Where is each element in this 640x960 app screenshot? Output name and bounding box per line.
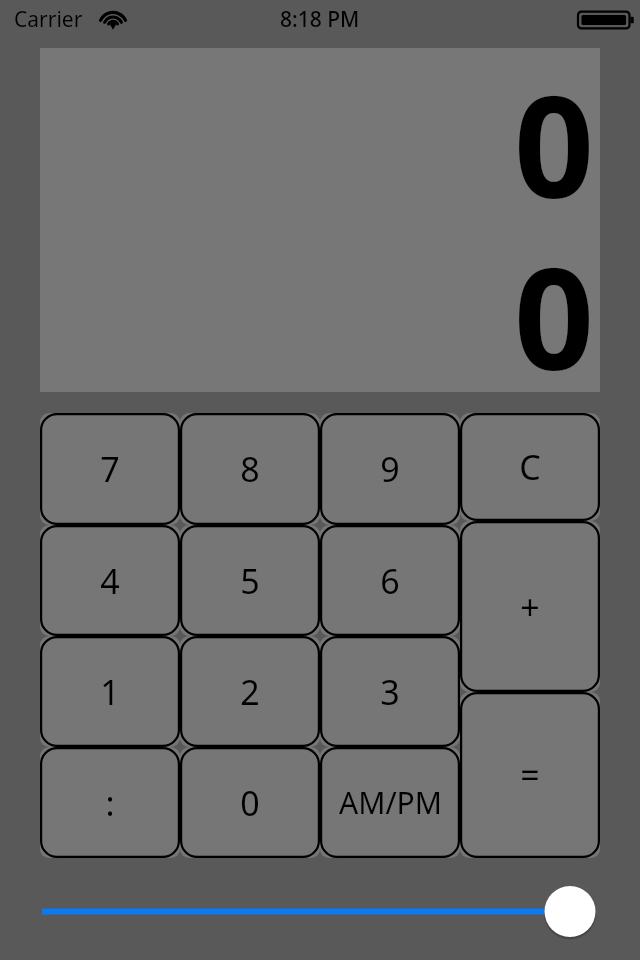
other: Battery full [578,8,634,32]
button[interactable]: 1 [40,636,180,747]
staticText: 9 [380,446,400,492]
staticText: 0 [513,48,594,220]
other: Wi-Fi signal [98,8,128,32]
staticText: C [519,444,541,490]
button[interactable]: 4 [40,525,180,636]
staticText: 0 [240,780,260,826]
staticText: 8:18 PM [280,5,360,34]
staticText: : [105,780,115,826]
button[interactable]: C [460,413,600,521]
button[interactable]: = [460,692,600,858]
staticText: 3 [380,669,400,715]
button[interactable]: 6 [320,525,460,636]
staticText: Carrier [14,5,83,34]
button[interactable]: + [460,521,600,692]
staticText: 7 [100,446,120,492]
staticText: 6 [380,558,400,604]
button[interactable]: AM/PM [320,747,460,858]
button[interactable]: 3 [320,636,460,747]
staticText: 4 [100,558,120,604]
staticText: 1 [100,669,120,715]
button[interactable]: 8 [180,413,320,525]
staticText: 0 [513,220,594,392]
staticText: = [520,752,540,798]
staticText: AM/PM [339,782,442,823]
button[interactable]: 7 [40,413,180,525]
button[interactable]: 0 [180,747,320,858]
staticText: 5 [240,558,260,604]
button[interactable]: 9 [320,413,460,525]
button[interactable]: 2 [180,636,320,747]
staticText: 2 [240,669,260,715]
button[interactable]: Value slider [0,859,640,960]
staticText: + [520,584,540,630]
staticText: 8 [240,446,260,492]
button[interactable]: : [40,747,180,858]
button[interactable]: 5 [180,525,320,636]
